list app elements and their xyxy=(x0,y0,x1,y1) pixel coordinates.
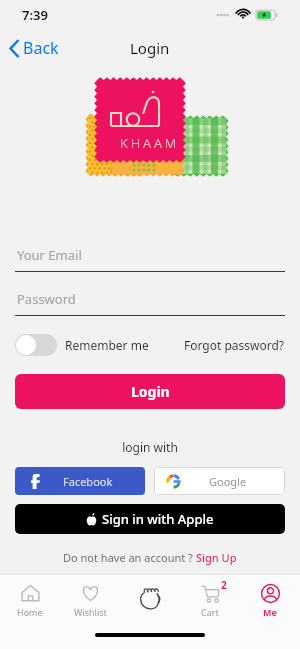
button[interactable]: Remember me toggle xyxy=(15,334,57,356)
button[interactable]: Login xyxy=(15,374,285,409)
button[interactable]: Me xyxy=(240,575,300,627)
staticText: 2 xyxy=(221,578,227,592)
staticText: 7:39 xyxy=(22,6,48,24)
staticText: Facebook xyxy=(63,474,113,489)
staticText: Google xyxy=(209,474,247,489)
button[interactable]: 2 xyxy=(180,575,240,627)
button[interactable]: Remember me xyxy=(65,337,149,353)
staticText: Your Email xyxy=(17,246,82,264)
button[interactable]: Back xyxy=(0,33,69,63)
staticText: Cart xyxy=(201,606,219,618)
button[interactable]: Try on xyxy=(120,575,180,627)
staticText: Home xyxy=(17,606,43,618)
button[interactable]: Home xyxy=(0,575,60,627)
button[interactable]: Sign in with Apple xyxy=(15,504,285,534)
button[interactable]: Sign Up xyxy=(196,550,237,565)
staticText: KHAAM xyxy=(120,134,180,152)
button[interactable]: Google xyxy=(154,467,285,495)
staticText: Me xyxy=(263,606,277,618)
button[interactable]: Your Email xyxy=(15,246,285,272)
button[interactable]: Password xyxy=(15,290,285,316)
staticText: Sign in with Apple xyxy=(102,510,214,528)
staticText: Login xyxy=(130,38,170,58)
staticText: login with xyxy=(0,439,300,455)
staticText: Wishlist xyxy=(74,606,107,618)
staticText: Login xyxy=(131,382,170,401)
staticText: Password xyxy=(17,290,76,308)
staticText: Back xyxy=(23,37,59,59)
button[interactable]: Wishlist xyxy=(60,575,120,627)
staticText: Do not have an account ? xyxy=(63,550,196,565)
button[interactable]: Forgot password? xyxy=(184,337,285,353)
button[interactable]: Facebook xyxy=(15,467,145,495)
